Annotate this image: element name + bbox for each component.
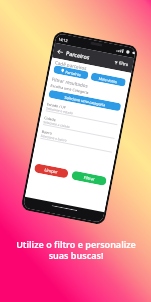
staticText: Bairro bbox=[41, 129, 53, 136]
staticText: Filtrar resultados bbox=[51, 76, 89, 89]
button[interactable]: Filtrar bbox=[71, 170, 107, 186]
button[interactable]: Limpar bbox=[34, 163, 69, 178]
staticText: Selecione o bairro bbox=[40, 134, 68, 143]
staticText: Selecione a cidade bbox=[43, 120, 70, 129]
staticText: Cidade bbox=[44, 115, 57, 122]
staticText: Limpar bbox=[44, 167, 59, 175]
button[interactable]: Parceiros bbox=[53, 65, 89, 80]
staticText: Filtrar bbox=[83, 175, 96, 182]
staticText: Parceiros bbox=[65, 69, 82, 77]
staticText: Cadê parceiros bbox=[54, 59, 88, 71]
staticText: Utilize o filtro e personalize suas busc… bbox=[16, 238, 136, 261]
button[interactable]: Mais vistos bbox=[90, 72, 126, 87]
staticText: Parceiros bbox=[65, 49, 90, 61]
button[interactable]: Selecione uma categoria bbox=[48, 90, 121, 111]
staticText: Estado / UF bbox=[46, 101, 67, 110]
button[interactable]: Voltar bbox=[55, 47, 65, 57]
staticText: Selecione uma categoria bbox=[64, 95, 106, 107]
staticText: Selecione o estado bbox=[46, 106, 74, 116]
staticText: Escolha uma Categoria bbox=[50, 83, 89, 95]
staticText: Mais vistos bbox=[98, 76, 118, 84]
staticText: filtro bbox=[118, 60, 129, 68]
button[interactable]: filtro bbox=[114, 59, 129, 68]
staticText: 14:12 bbox=[58, 36, 69, 43]
